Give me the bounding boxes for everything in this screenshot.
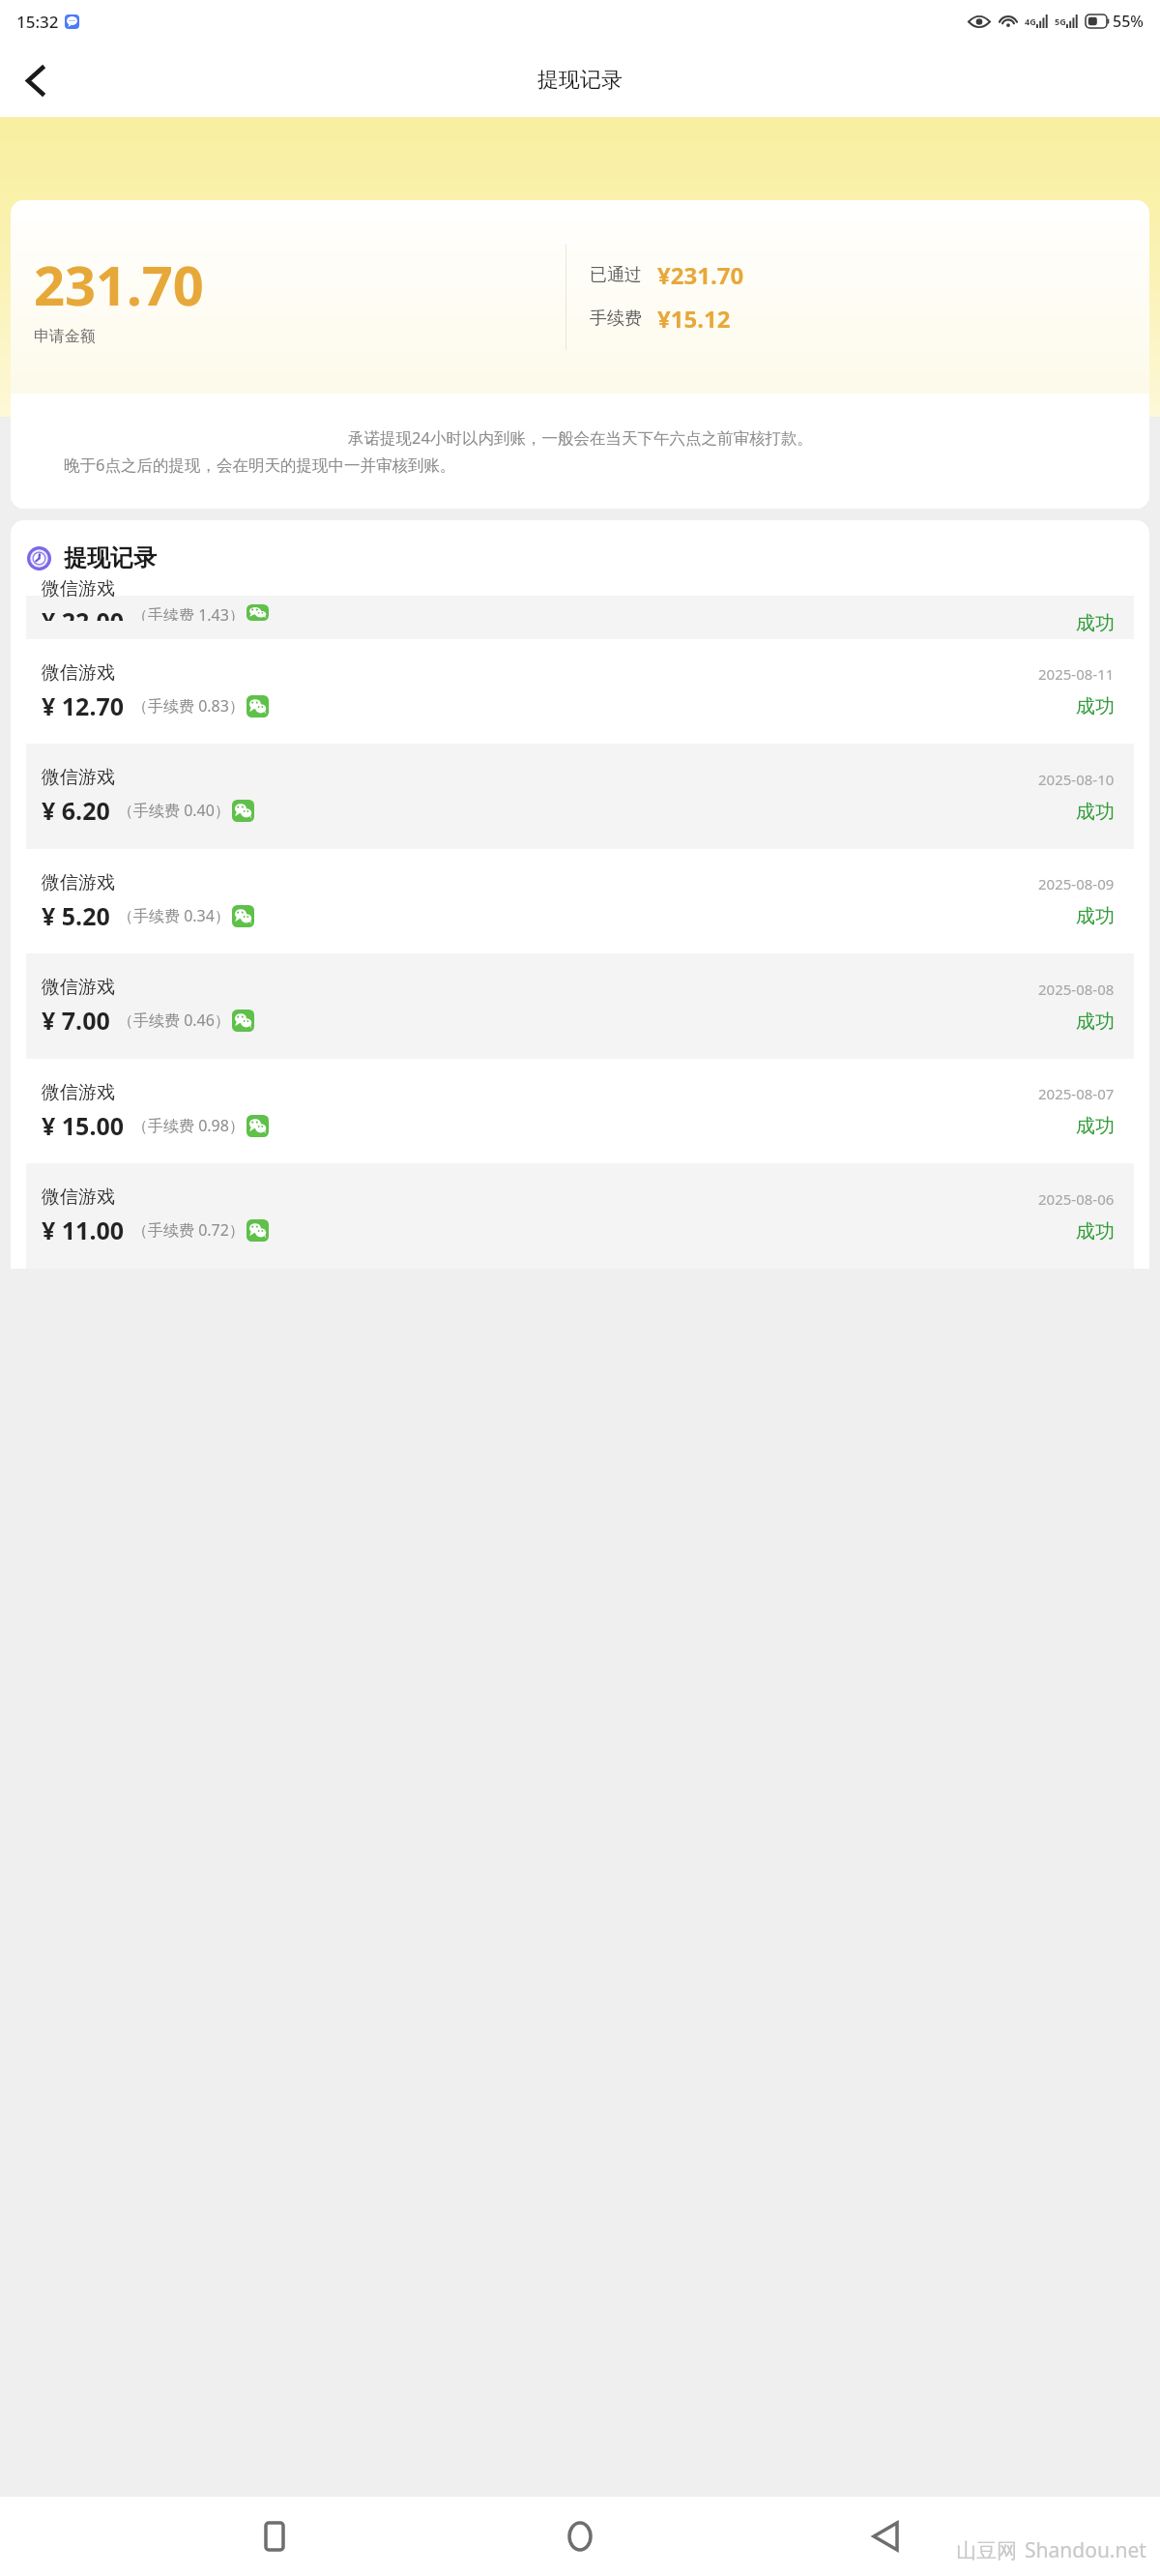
staticText: 55% (1113, 11, 1144, 32)
staticText: 成功 (1076, 1219, 1115, 1244)
staticText: （手续费 0.34） (118, 905, 230, 926)
staticText: ¥231.70 (657, 259, 744, 291)
staticText: ¥ 7.00 (42, 1004, 110, 1037)
staticText: ¥ 22.00 (42, 604, 125, 621)
staticText: 2025-08-09 (1038, 874, 1115, 893)
button[interactable]: 微信游戏 (26, 849, 1134, 953)
staticText: ¥ 6.20 (42, 794, 110, 827)
staticText: Shandou.net (1025, 2536, 1146, 2564)
button[interactable]: 231.70 (11, 200, 1149, 509)
staticText: 成功 (1076, 694, 1115, 718)
staticText: 成功 (1076, 611, 1115, 635)
staticText: （手续费 0.98） (132, 1115, 245, 1136)
staticText: 15:32 (16, 11, 59, 33)
staticText: （手续费 1.43） (132, 604, 245, 621)
button[interactable]: 微信游戏 (26, 1163, 1134, 1269)
staticText: 微信游戏 (42, 871, 115, 894)
button[interactable]: Back (855, 2505, 916, 2567)
staticText: 2025-08-08 (1038, 980, 1115, 999)
staticText: 2025-08-06 (1038, 1189, 1115, 1209)
staticText: ¥ 5.20 (42, 899, 110, 932)
staticText: 手续费 (590, 307, 642, 330)
staticText: ¥ 15.00 (42, 1109, 125, 1142)
staticText: 成功 (1076, 904, 1115, 928)
staticText: 已通过 (590, 264, 642, 286)
button[interactable]: 微信游戏 (26, 953, 1134, 1059)
staticText: ¥15.12 (657, 303, 731, 335)
staticText: 晚于6点之后的提现，会在明天的提现中一并审核到账。 (64, 454, 1149, 476)
staticText: 山豆网 (956, 2538, 1017, 2563)
staticText: 2025-08-07 (1038, 1084, 1115, 1103)
staticText: 提现记录 (64, 543, 157, 572)
button[interactable]: 微信游戏 (26, 744, 1134, 849)
staticText: （手续费 0.46） (118, 1010, 230, 1031)
button[interactable]: Home (549, 2505, 611, 2567)
button[interactable]: Back (8, 53, 62, 107)
button[interactable]: 提现记录 (11, 520, 1149, 596)
staticText: 2025-08-10 (1038, 770, 1115, 789)
staticText: 4G (1025, 15, 1036, 27)
staticText: 微信游戏 (42, 1186, 115, 1209)
staticText: 微信游戏 (42, 1081, 115, 1104)
button[interactable]: 微信游戏 (26, 639, 1134, 744)
staticText: ¥ 11.00 (42, 1214, 125, 1246)
button[interactable]: Recents (244, 2505, 305, 2567)
staticText: 5G (1055, 15, 1066, 27)
staticText: 承诺提现24小时以内到账，一般会在当天下午六点之前审核打款。 (348, 426, 813, 449)
staticText: （手续费 0.83） (132, 695, 245, 717)
staticText: 微信游戏 (42, 661, 115, 685)
staticText: （手续费 0.40） (118, 800, 230, 821)
staticText: 微信游戏 (42, 976, 115, 999)
staticText: 成功 (1076, 1114, 1115, 1138)
staticText: 成功 (1076, 800, 1115, 824)
button[interactable]: 微信游戏 (26, 596, 1134, 639)
staticText: 2025-08-11 (1038, 664, 1115, 684)
staticText: 提现记录 (537, 67, 623, 94)
button[interactable]: 微信游戏 (26, 1059, 1134, 1163)
staticText: 微信游戏 (42, 577, 115, 600)
staticText: （手续费 0.72） (132, 1219, 245, 1241)
staticText: 成功 (1076, 1010, 1115, 1034)
staticText: 微信游戏 (42, 766, 115, 789)
staticText: 申请金额 (34, 327, 96, 346)
staticText: 231.70 (34, 248, 204, 321)
staticText: ¥ 12.70 (42, 689, 125, 722)
